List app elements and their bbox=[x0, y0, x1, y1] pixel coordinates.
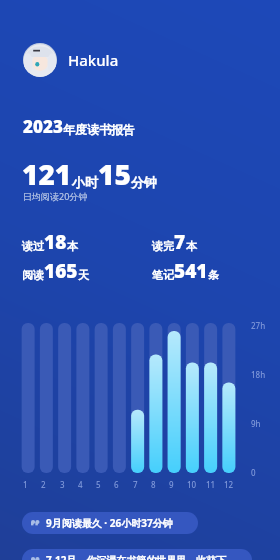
staticText: 12 bbox=[224, 479, 235, 490]
staticText: 3 bbox=[60, 479, 71, 490]
staticText: 165 bbox=[44, 258, 78, 284]
staticText: 年度读书报告 bbox=[63, 122, 135, 137]
staticText: 0 bbox=[251, 467, 256, 478]
staticText: 分钟 bbox=[131, 174, 157, 190]
staticText: 7-12月，你沉浸在书籍的世界里，收获下 bbox=[46, 553, 227, 560]
staticText: 7 bbox=[174, 229, 186, 255]
staticText: 10 bbox=[187, 479, 198, 490]
staticText: 2023 bbox=[23, 115, 63, 138]
staticText: 9h bbox=[251, 418, 261, 429]
button[interactable]: Profile avatar bbox=[23, 43, 119, 77]
other: Monthly reading hours chart bbox=[0, 0, 280, 560]
staticText: 5 bbox=[96, 479, 107, 490]
staticText: 4 bbox=[78, 479, 89, 490]
staticText: 9 bbox=[169, 479, 180, 490]
staticText: 读完 bbox=[152, 239, 174, 253]
button[interactable]: 阅读 bbox=[22, 258, 152, 284]
staticText: 2 bbox=[41, 479, 52, 490]
button[interactable]: 读过 bbox=[22, 229, 152, 255]
staticText: 本 bbox=[67, 239, 78, 253]
staticText: 11 bbox=[206, 479, 217, 490]
staticText: 15 bbox=[98, 155, 131, 193]
staticText: 小时 bbox=[72, 174, 98, 190]
button[interactable]: 读完 bbox=[152, 229, 197, 255]
staticText: 本 bbox=[186, 239, 197, 253]
staticText: 18h bbox=[251, 369, 266, 380]
staticText: 9月阅读最久 · 26小时37分钟 bbox=[46, 516, 173, 530]
staticText: 6 bbox=[114, 479, 125, 490]
staticText: 天 bbox=[78, 268, 89, 282]
staticText: 541 bbox=[174, 258, 208, 284]
staticText: 笔记 bbox=[152, 268, 174, 282]
staticText: 8 bbox=[151, 479, 162, 490]
staticText: 18 bbox=[44, 229, 67, 255]
button[interactable]: 9月阅读最久 · 26小时37分钟 bbox=[22, 512, 198, 534]
staticText: 1 bbox=[23, 479, 34, 490]
staticText: 121 bbox=[22, 155, 72, 193]
other: Profile avatar bbox=[23, 43, 57, 77]
staticText: 条 bbox=[208, 268, 219, 282]
button[interactable]: 7-12月，你沉浸在书籍的世界里，收获下 bbox=[22, 549, 252, 560]
staticText: 阅读 bbox=[22, 268, 44, 282]
staticText: Hakula bbox=[68, 50, 119, 70]
staticText: 27h bbox=[251, 320, 266, 331]
button[interactable]: 笔记 bbox=[152, 258, 219, 284]
staticText: 读过 bbox=[22, 239, 44, 253]
staticText: 日均阅读20分钟 bbox=[23, 190, 88, 202]
staticText: 7 bbox=[133, 479, 144, 490]
